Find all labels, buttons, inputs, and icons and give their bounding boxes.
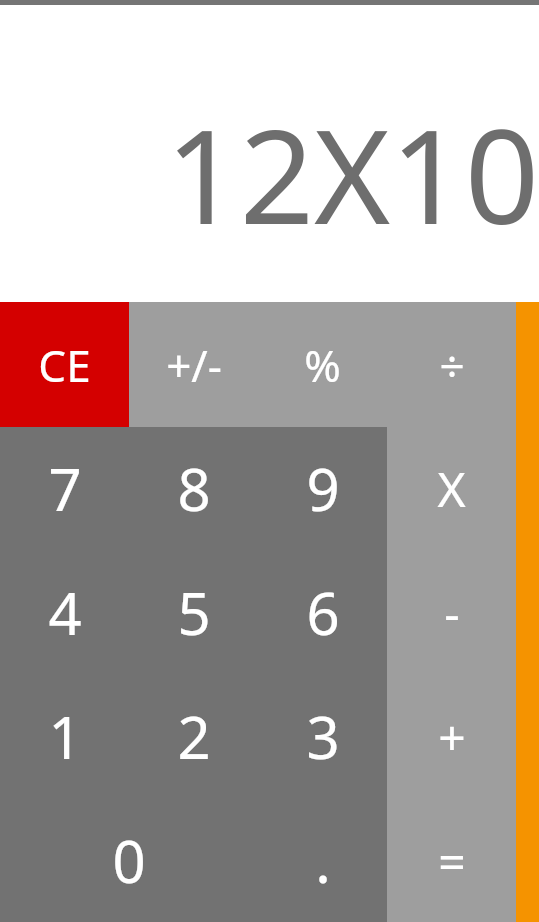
staticText: 9 (306, 449, 340, 528)
staticText: X (437, 456, 466, 521)
staticText: 2 (177, 697, 211, 776)
button[interactable]: 7 (0, 427, 129, 550)
staticText: CE (38, 335, 91, 395)
staticText: 12X10 (165, 85, 539, 262)
button[interactable]: Decimal point (258, 798, 387, 922)
button[interactable]: Equals (387, 798, 516, 922)
button[interactable]: Multiply (387, 427, 516, 550)
staticText: - (444, 580, 460, 645)
staticText: 0 (112, 821, 146, 900)
button[interactable]: 8 (129, 427, 258, 550)
button[interactable]: 4 (0, 550, 129, 674)
staticText: 5 (177, 573, 211, 652)
button[interactable]: 3 (258, 674, 387, 798)
staticText: 4 (48, 573, 82, 652)
staticText: 3 (306, 697, 340, 776)
staticText: 7 (48, 449, 82, 528)
button[interactable]: 5 (129, 550, 258, 674)
button[interactable]: Divide (387, 302, 516, 427)
staticText: % (304, 335, 341, 395)
staticText: = (438, 828, 466, 893)
button[interactable]: 6 (258, 550, 387, 674)
button[interactable]: Add (387, 674, 516, 798)
staticText: 1 (48, 697, 82, 776)
button[interactable]: 2 (129, 674, 258, 798)
button[interactable]: 9 (258, 427, 387, 550)
staticText: ÷ (439, 335, 465, 395)
button[interactable]: 1 (0, 674, 129, 798)
button[interactable]: Subtract (387, 550, 516, 674)
staticText: +/- (166, 335, 222, 395)
staticText: 8 (177, 449, 211, 528)
button[interactable]: Percent (258, 302, 387, 427)
button[interactable]: Plus minus sign toggle (129, 302, 258, 427)
staticText: . (315, 821, 331, 900)
button[interactable]: CE (0, 302, 129, 427)
staticText: 6 (306, 573, 340, 652)
staticText: + (438, 704, 466, 769)
button[interactable]: 0 (0, 798, 258, 922)
